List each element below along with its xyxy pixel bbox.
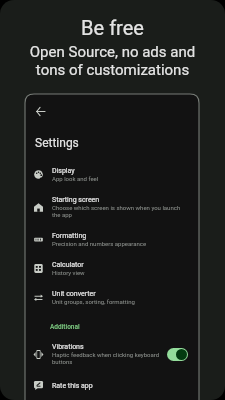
staticText: Rate this app <box>52 382 93 390</box>
staticText: Additional <box>50 323 80 331</box>
staticText: Be free <box>0 16 225 39</box>
staticText: App look and feel <box>52 175 99 182</box>
staticText: Calculator <box>52 261 84 269</box>
button[interactable]: Rate this app <box>25 372 199 399</box>
button[interactable]: Formatting <box>25 225 199 254</box>
staticText: History view <box>52 269 85 276</box>
button[interactable]: Vibrations <box>25 336 199 372</box>
button[interactable]: Back <box>30 101 50 121</box>
button[interactable]: Starting screen <box>25 189 199 225</box>
button[interactable]: Vibrations toggle <box>167 348 188 361</box>
staticText: Unit converter <box>52 290 96 298</box>
staticText: Open Source, no ads and tons of customiz… <box>0 43 225 79</box>
staticText: Unit groups, sorting, formatting <box>52 298 135 305</box>
staticText: Display <box>52 167 75 175</box>
button[interactable]: Calculator <box>25 254 199 283</box>
staticText: Choose which screen is shown when you la… <box>52 204 181 218</box>
staticText: Starting screen <box>52 196 100 204</box>
button[interactable]: Display <box>25 160 199 189</box>
staticText: Vibrations <box>52 343 84 351</box>
staticText: Precision and numbers appearance <box>52 240 147 247</box>
staticText: Formatting <box>52 232 87 240</box>
staticText: Haptic feedback when clicking keyboard b… <box>52 351 160 365</box>
button[interactable]: Unit converter <box>25 283 199 312</box>
staticText: Settings <box>35 136 79 150</box>
